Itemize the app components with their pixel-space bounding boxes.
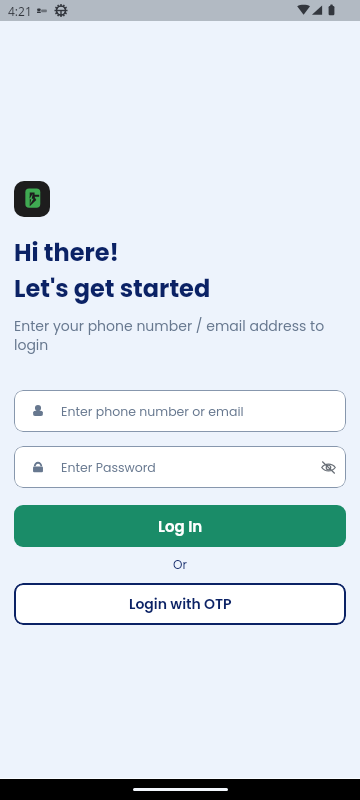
staticText: Login with OTP xyxy=(129,594,232,614)
staticText: Enter Password xyxy=(61,459,156,476)
staticText: Log In xyxy=(158,516,203,537)
staticText: Hi there! Let's get started xyxy=(14,236,211,306)
button[interactable]: Enter phone number or email xyxy=(14,390,346,432)
button[interactable]: Enter Password xyxy=(14,446,346,488)
button[interactable]: Log In xyxy=(14,505,346,547)
button[interactable]: Login with OTP xyxy=(14,583,346,625)
staticText: 4:21 xyxy=(8,3,32,19)
button[interactable]: Show password xyxy=(311,450,345,484)
staticText: Or xyxy=(0,556,360,573)
staticText: Enter phone number or email xyxy=(61,403,244,420)
staticText: Enter your phone number / email address … xyxy=(14,316,346,355)
